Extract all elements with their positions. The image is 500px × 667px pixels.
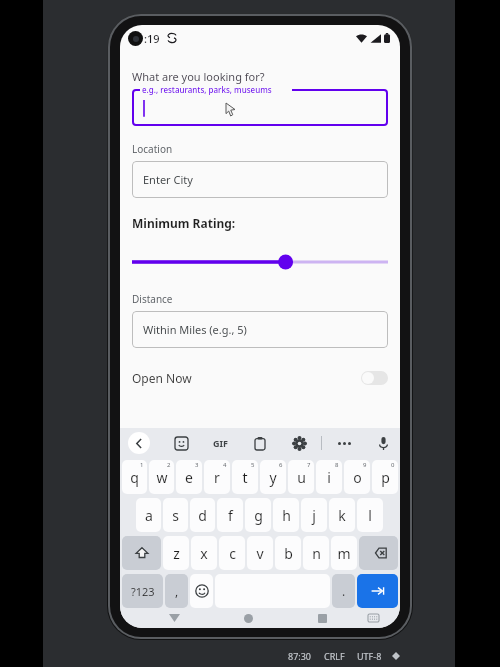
button[interactable]: ?123 <box>122 574 163 608</box>
button[interactable]: Clipboard <box>251 434 269 452</box>
staticText: k <box>338 506 346 525</box>
button[interactable]: n <box>303 536 329 570</box>
button[interactable]: More options <box>335 434 353 452</box>
button[interactable]: Hide keyboard <box>164 608 184 628</box>
staticText: Distance <box>132 292 173 306</box>
button[interactable]: h <box>273 498 299 532</box>
staticText: g <box>254 506 263 525</box>
button[interactable]: , <box>165 574 188 608</box>
staticText: u <box>297 468 306 487</box>
staticText: i <box>327 468 331 487</box>
staticText: , <box>175 583 179 599</box>
button[interactable]: x <box>191 536 217 570</box>
staticText: 1 <box>140 461 144 469</box>
staticText: UTF-8 <box>357 650 382 662</box>
staticText: 0 <box>391 461 395 469</box>
staticText: f <box>228 506 233 525</box>
button[interactable]: u <box>288 460 314 494</box>
staticText: h <box>282 506 291 525</box>
staticText: q <box>130 468 139 487</box>
staticText: r <box>214 468 220 487</box>
staticText: What are you looking for? <box>132 69 265 84</box>
button[interactable]: Open Now <box>132 365 388 391</box>
staticText: GIF <box>213 437 228 449</box>
button[interactable]: GIF <box>211 435 230 451</box>
staticText: :19 <box>144 31 160 46</box>
button[interactable]: o <box>344 460 370 494</box>
staticText: a <box>145 506 153 525</box>
staticText: 9 <box>363 461 367 469</box>
button[interactable]: Stickers <box>172 434 190 452</box>
button[interactable]: d <box>190 498 215 532</box>
staticText: v <box>256 544 264 563</box>
staticText: y <box>269 468 277 487</box>
staticText: z <box>173 544 180 563</box>
staticText: x <box>200 544 208 563</box>
staticText: 4 <box>223 461 227 469</box>
staticText: e <box>185 468 193 487</box>
button[interactable]: m <box>331 536 357 570</box>
button[interactable]: z <box>163 536 189 570</box>
button[interactable]: b <box>275 536 301 570</box>
button[interactable]: t <box>232 460 258 494</box>
staticText: n <box>312 544 321 563</box>
staticText: s <box>172 506 179 525</box>
staticText: 3 <box>195 461 199 469</box>
button[interactable]: Enter City <box>132 161 388 198</box>
button[interactable]: r <box>204 460 230 494</box>
button[interactable]: i <box>316 460 342 494</box>
button[interactable]: s <box>163 498 188 532</box>
button[interactable]: Next <box>357 574 398 608</box>
staticText: Open Now <box>132 370 192 386</box>
staticText: Enter City <box>143 172 193 187</box>
staticText: b <box>284 544 293 563</box>
staticText: l <box>368 506 372 525</box>
button[interactable]: y <box>260 460 286 494</box>
button[interactable]: Switch input method <box>363 608 383 628</box>
button[interactable]: l <box>357 498 383 532</box>
button[interactable]: f <box>217 498 243 532</box>
staticText: 87:30 <box>288 650 312 662</box>
button[interactable]: Back <box>128 432 150 454</box>
staticText: . <box>342 583 346 599</box>
button[interactable]: e <box>176 460 202 494</box>
button[interactable]: p <box>372 460 398 494</box>
staticText: c <box>229 544 236 563</box>
staticText: p <box>381 468 390 487</box>
staticText: 2 <box>167 461 171 469</box>
button[interactable]: Home <box>238 608 258 628</box>
staticText: ?123 <box>131 584 155 599</box>
button[interactable]: j <box>301 498 327 532</box>
button[interactable]: Settings <box>290 434 308 452</box>
button[interactable]: Emoji <box>190 574 213 608</box>
button[interactable]: q <box>122 460 147 494</box>
button[interactable]: w <box>149 460 174 494</box>
staticText: m <box>337 544 351 563</box>
button[interactable]: v <box>247 536 273 570</box>
button[interactable]: a <box>136 498 161 532</box>
staticText: Location <box>132 142 173 156</box>
staticText: 6 <box>279 461 283 469</box>
staticText: CRLF <box>324 650 345 662</box>
button[interactable]: c <box>219 536 245 570</box>
button[interactable]: Voice input <box>374 434 392 452</box>
staticText: j <box>312 506 316 525</box>
button[interactable]: g <box>245 498 271 532</box>
button[interactable]: e.g., restaurants, parks, museums <box>132 89 388 126</box>
staticText: 7 <box>307 461 311 469</box>
button[interactable] <box>132 252 388 272</box>
staticText: 8 <box>335 461 339 469</box>
staticText: Within Miles (e.g., 5) <box>143 322 247 337</box>
button[interactable]: k <box>329 498 355 532</box>
button[interactable]: Within Miles (e.g., 5) <box>132 311 388 348</box>
staticText: Minimum Rating: <box>132 215 236 231</box>
button[interactable]: . <box>332 574 355 608</box>
staticText: o <box>353 468 362 487</box>
button[interactable]: Shift <box>122 536 161 570</box>
button[interactable]: Recents <box>312 608 332 628</box>
staticText: d <box>198 506 207 525</box>
staticText: 5 <box>251 461 255 469</box>
other: Open Now toggle <box>361 371 388 385</box>
button[interactable]: Backspace <box>359 536 398 570</box>
